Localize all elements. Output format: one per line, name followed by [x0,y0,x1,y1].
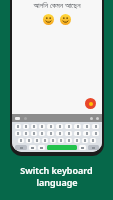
button[interactable]: Key [82,138,88,143]
button[interactable]: Key [47,131,54,136]
button[interactable]: Language [38,145,45,150]
staticText: আপনি কেমন আছেন [12,0,102,10]
button[interactable]: Settings [96,117,99,120]
button[interactable]: Menu [15,117,20,120]
staticText: language [36,176,78,188]
button[interactable]: Key [74,131,81,136]
button[interactable]: Key [23,131,29,136]
button[interactable]: Key [15,124,21,129]
button[interactable]: Key [50,138,56,143]
button[interactable]: Key [66,138,72,143]
button[interactable]: Key [74,138,80,143]
button[interactable]: Key [58,138,64,143]
button[interactable]: Key [18,138,24,143]
button[interactable]: Key [31,131,37,136]
button[interactable]: Sticker [24,117,27,120]
button[interactable]: Comma [29,145,36,150]
button[interactable]: Key [39,124,45,129]
button[interactable]: Key [56,124,63,129]
button[interactable]: Key [92,131,99,136]
button[interactable]: Key [92,124,99,129]
button[interactable]: Key [31,124,37,129]
button[interactable]: Key [74,124,81,129]
button[interactable]: Period [79,145,86,150]
button[interactable]: Key [15,131,21,136]
staticText: Switch keyboard [20,164,93,176]
button[interactable]: Key [42,138,48,143]
button[interactable]: Key [34,138,40,143]
button[interactable]: Key [90,138,96,143]
button[interactable]: Key [26,138,32,143]
button[interactable]: Key [39,131,45,136]
button[interactable]: Space [47,145,77,150]
button[interactable]: Key [65,131,72,136]
button[interactable]: Symbols [15,145,27,150]
button[interactable]: Key [83,131,90,136]
button[interactable]: Theme [90,117,93,120]
button[interactable]: Record [85,98,96,109]
button[interactable]: Key [65,124,72,129]
button[interactable]: Key [47,124,54,129]
button[interactable]: Key [23,124,29,129]
button[interactable]: Key [56,131,63,136]
button[interactable]: Key [83,124,90,129]
button[interactable]: Enter [88,145,99,150]
